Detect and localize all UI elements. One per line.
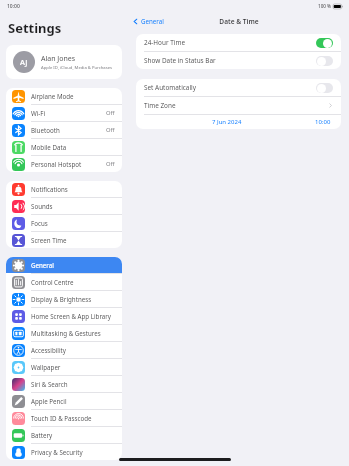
button[interactable]: Display & Brightness (6, 291, 122, 307)
button[interactable]: Time Zone (136, 97, 341, 114)
staticText: Alan Jones (41, 54, 76, 64)
button[interactable]: Toggle on (316, 38, 333, 48)
staticText: General (31, 261, 54, 269)
button[interactable]: 24-Hour Time (136, 34, 341, 51)
staticText: AJ (20, 57, 28, 67)
staticText: Apple ID, iCloud, Media & Purchases (41, 65, 113, 71)
staticText: Accessibility (31, 346, 66, 354)
staticText: Privacy & Security (31, 448, 83, 456)
button[interactable]: Personal Hotspot (6, 156, 122, 172)
staticText: 100 % (318, 3, 331, 9)
staticText: Personal Hotspot (31, 160, 82, 168)
staticText: 10:00 (7, 3, 20, 10)
staticText: 10:00 (315, 118, 331, 126)
staticText: 24-Hour Time (144, 38, 186, 47)
staticText: General (141, 17, 164, 25)
staticText: Notifications (31, 185, 68, 193)
staticText: Mobile Data (31, 143, 67, 151)
staticText: Wallpaper (31, 363, 61, 371)
staticText: Touch ID & Passcode (31, 414, 92, 422)
button[interactable]: Accessibility (6, 342, 122, 358)
staticText: Airplane Mode (31, 92, 74, 100)
button[interactable]: Screen Time (6, 232, 122, 248)
staticText: Home Screen & App Library (31, 312, 111, 320)
button[interactable]: General (128, 14, 170, 28)
staticText: Off (106, 109, 115, 117)
staticText: Wi-Fi (31, 109, 46, 117)
button[interactable]: Control Centre (6, 274, 122, 290)
button[interactable]: Home Screen & App Library (6, 308, 122, 324)
staticText: Control Centre (31, 278, 74, 286)
button[interactable]: Sounds (6, 198, 122, 214)
button[interactable]: AJ (6, 45, 122, 79)
button[interactable]: Show Date in Status Bar (136, 52, 341, 69)
staticText: Bluetooth (31, 126, 60, 134)
button[interactable]: Bluetooth (6, 122, 122, 138)
button[interactable]: Privacy & Security (6, 444, 122, 460)
staticText: Screen Time (31, 236, 67, 244)
staticText: Off (106, 160, 115, 168)
button[interactable]: 7 Jun 2024 (210, 116, 244, 128)
staticText: Siri & Search (31, 380, 68, 388)
button[interactable]: Battery (6, 427, 122, 443)
staticText: Focus (31, 219, 48, 227)
button[interactable]: Notifications (6, 181, 122, 197)
staticText: Off (106, 126, 115, 134)
staticText: Set Automatically (144, 83, 197, 92)
button[interactable]: Set Automatically (136, 79, 341, 96)
staticText: Show Date in Status Bar (144, 56, 216, 65)
staticText: Display & Brightness (31, 295, 92, 303)
button[interactable]: Apple Pencil (6, 393, 122, 409)
button[interactable]: Wi-Fi (6, 105, 122, 121)
button[interactable]: Siri & Search (6, 376, 122, 392)
staticText: Multitasking & Gestures (31, 329, 101, 337)
staticText: Time Zone (144, 101, 176, 110)
staticText: Sounds (31, 202, 53, 210)
button[interactable]: Toggle off (316, 83, 333, 93)
button[interactable]: Multitasking & Gestures (6, 325, 122, 341)
button[interactable]: Focus (6, 215, 122, 231)
staticText: Settings (8, 19, 62, 37)
staticText: Battery (31, 431, 53, 439)
staticText: Apple Pencil (31, 397, 67, 405)
button[interactable]: General (6, 257, 122, 273)
button[interactable]: Toggle off (316, 56, 333, 66)
button[interactable]: Mobile Data (6, 139, 122, 155)
button[interactable]: Airplane Mode (6, 88, 122, 104)
button[interactable]: Touch ID & Passcode (6, 410, 122, 426)
staticText: Date & Time (219, 17, 259, 26)
button[interactable]: 10:00 (313, 116, 333, 128)
button[interactable]: Wallpaper (6, 359, 122, 375)
staticText: 7 Jun 2024 (212, 118, 242, 126)
